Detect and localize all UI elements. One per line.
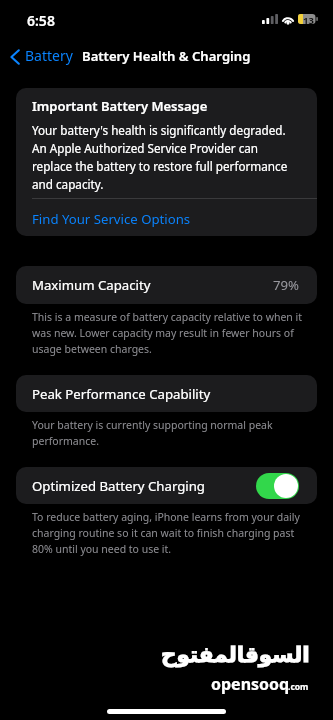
button[interactable]: Find Your Service Options (16, 199, 317, 236)
button[interactable]: Optimized Battery Charging (16, 467, 317, 504)
staticText: Battery Health & Charging (82, 47, 251, 65)
staticText: Battery (25, 46, 73, 65)
staticText: Your battery is currently supporting nor… (32, 416, 305, 448)
staticText: To reduce battery aging, iPhone learns f… (32, 508, 305, 556)
staticText: 79% (273, 276, 300, 294)
button[interactable]: Maximum Capacity (16, 266, 317, 304)
staticText: Optimized Battery Charging (32, 477, 205, 495)
staticText: Important Battery Message (32, 97, 208, 115)
staticText: Maximum Capacity (32, 276, 151, 294)
staticText: 6:58 (27, 11, 55, 30)
button[interactable]: Peak Performance Capability (16, 375, 317, 412)
button[interactable]: Battery (0, 41, 81, 70)
staticText: .com (288, 681, 309, 693)
staticText: Peak Performance Capability (32, 385, 211, 403)
button[interactable]: Optimized Battery Charging (256, 473, 299, 499)
staticText: 13 (303, 14, 314, 24)
staticText: This is a measure of battery capacity re… (32, 308, 305, 356)
staticText: السوقالمفتوح (161, 642, 310, 667)
staticText: opensooq (211, 673, 290, 695)
staticText: Find Your Service Options (32, 210, 191, 228)
staticText: Your battery's health is significantly d… (32, 121, 298, 193)
